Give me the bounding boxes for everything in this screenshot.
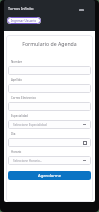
staticText: Dia bbox=[11, 132, 16, 136]
button[interactable]: Seleccione Especialidad bbox=[8, 120, 91, 129]
button[interactable] bbox=[8, 84, 91, 93]
button[interactable] bbox=[8, 102, 91, 111]
button[interactable] bbox=[8, 138, 91, 147]
button[interactable]: Seleccione Horario... bbox=[8, 156, 91, 165]
staticText: Turnos Infinito bbox=[8, 6, 34, 11]
staticText: Apellido bbox=[11, 78, 23, 82]
staticText: Correo Electronico bbox=[11, 96, 37, 100]
button[interactable] bbox=[8, 66, 91, 75]
staticText: Formulario de Agenda bbox=[8, 40, 91, 47]
staticText: Seleccione Horario... bbox=[13, 159, 43, 163]
staticText: Horario bbox=[11, 150, 22, 154]
button[interactable]: Menu bbox=[77, 6, 85, 14]
button[interactable]: Ingresar Usuario bbox=[7, 17, 41, 24]
staticText: Seleccione Especialidad bbox=[13, 123, 47, 127]
button[interactable]: Agendarme bbox=[8, 171, 91, 180]
staticText: Agendarme bbox=[38, 173, 62, 179]
staticText: Ingresar Usuario bbox=[11, 19, 37, 23]
staticText: Especialidad bbox=[11, 114, 28, 118]
staticText: Nombre bbox=[11, 60, 23, 64]
